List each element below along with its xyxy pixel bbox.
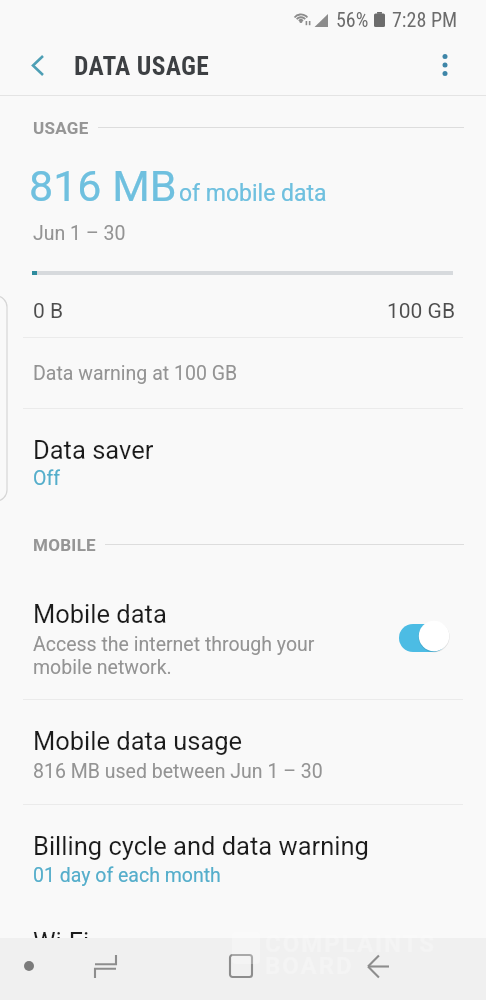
staticText: USAGE — [33, 118, 89, 138]
button[interactable]: Back — [353, 941, 403, 991]
staticText: Billing cycle and data warning — [33, 831, 369, 861]
staticText: Jun 1 – 30 — [33, 222, 126, 245]
staticText: 7:28 PM — [392, 8, 458, 31]
button[interactable]: Data warning at 100 GB — [0, 338, 486, 408]
button[interactable]: Home — [216, 941, 266, 991]
staticText: Mobile data — [33, 599, 167, 629]
button[interactable]: Billing cycle and data warning — [0, 805, 486, 909]
staticText: Data saver — [33, 435, 154, 465]
staticText: of mobile data — [179, 180, 327, 207]
staticText: COMPLAINTS — [265, 930, 437, 958]
staticText: 56% — [336, 8, 369, 31]
button[interactable]: Mobile data toggle — [399, 620, 451, 652]
staticText: 0 B — [33, 299, 64, 324]
staticText: 01 day of each month — [33, 864, 221, 887]
staticText: MOBILE — [33, 535, 96, 555]
button[interactable]: Wi-Fi — [0, 909, 486, 938]
button[interactable]: Navigate up — [0, 38, 74, 96]
staticText: 100 GB — [387, 299, 456, 324]
staticText: Off — [33, 467, 60, 490]
staticText: Mobile data usage — [33, 726, 243, 756]
staticText: 816 MB used between Jun 1 – 30 — [33, 760, 323, 783]
staticText: Access the internet through your mobile … — [33, 633, 315, 679]
button[interactable]: Mobile data usage — [0, 700, 486, 804]
button[interactable]: More options — [408, 38, 486, 96]
button[interactable]: Data saver — [0, 409, 486, 504]
staticText: 816 MB — [29, 161, 177, 211]
button[interactable]: Show keyboard — [4, 941, 54, 991]
staticText: Data warning at 100 GB — [33, 362, 238, 385]
staticText: Wi-Fi — [33, 927, 90, 956]
button[interactable]: Mobile data — [0, 588, 486, 699]
button[interactable]: Recents — [80, 941, 130, 991]
staticText: DATA USAGE — [74, 51, 210, 81]
